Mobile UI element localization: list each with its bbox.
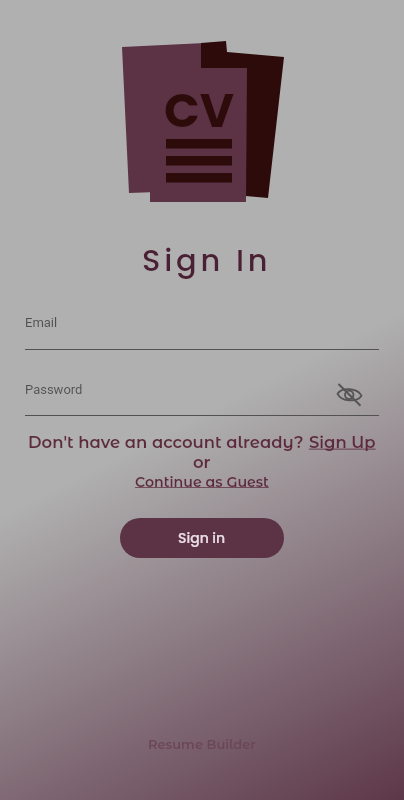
staticText: Sign in [178,528,226,548]
staticText: Sign In [142,239,272,282]
button[interactable]: Show password [336,382,363,409]
button[interactable]: Sign in [120,518,284,558]
button[interactable]: Continue as Guest [135,473,269,490]
staticText: Resume Builder [148,736,256,752]
staticText: Email [25,315,58,330]
staticText: Sign Up [309,432,376,452]
staticText: Continue as Guest [135,473,269,490]
staticText: Don't have an account already? [28,432,309,452]
staticText: Password [25,382,83,397]
staticText: CV [164,78,235,144]
staticText: or [193,452,211,472]
button[interactable]: Sign Up [309,432,376,452]
